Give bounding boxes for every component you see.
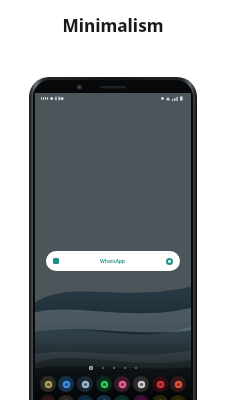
button[interactable]: App <box>170 395 186 400</box>
button[interactable]: App <box>96 395 112 400</box>
button[interactable]: App <box>40 395 56 400</box>
button[interactable]: App <box>58 376 74 392</box>
button[interactable]: App <box>114 395 130 400</box>
button[interactable]: App icon <box>46 251 180 271</box>
other: Home page <box>89 366 93 370</box>
button[interactable]: App <box>40 376 56 392</box>
button[interactable]: App <box>152 395 168 400</box>
button[interactable]: App <box>58 395 74 400</box>
button[interactable]: App <box>133 376 149 392</box>
button[interactable]: App <box>133 395 149 400</box>
button[interactable]: App <box>77 376 93 392</box>
button[interactable]: App <box>96 376 112 392</box>
other: Settings <box>166 258 173 265</box>
button[interactable]: App <box>152 376 168 392</box>
staticText: Minimalism <box>62 14 164 37</box>
staticText: WhatsApp <box>100 258 125 265</box>
button[interactable]: App <box>170 376 186 392</box>
other: App icon <box>53 258 59 264</box>
button[interactable]: App <box>77 395 93 400</box>
button[interactable]: App <box>114 376 130 392</box>
